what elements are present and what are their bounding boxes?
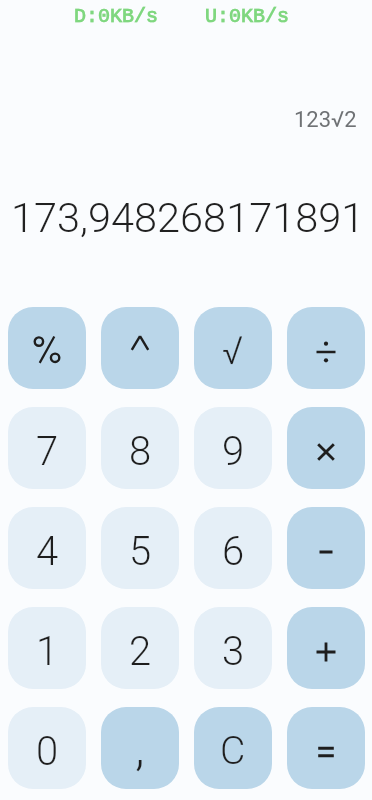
- staticText: 1: [36, 628, 59, 675]
- button[interactable]: 9: [194, 407, 272, 489]
- staticText: 6: [222, 528, 245, 575]
- button[interactable]: 3: [194, 607, 272, 689]
- button[interactable]: 4: [8, 507, 86, 589]
- button[interactable]: [287, 307, 365, 389]
- staticText: 3: [222, 628, 245, 675]
- staticText: D:0KB/s: [74, 5, 159, 28]
- staticText: √: [222, 328, 244, 374]
- staticText: 9: [222, 428, 245, 475]
- button[interactable]: [287, 507, 365, 589]
- button[interactable]: [8, 307, 86, 389]
- button[interactable]: ,: [101, 707, 179, 789]
- button[interactable]: C: [194, 707, 272, 789]
- button[interactable]: 7: [8, 407, 86, 489]
- button[interactable]: 5: [101, 507, 179, 589]
- staticText: ,: [135, 719, 145, 778]
- button[interactable]: 6: [194, 507, 272, 589]
- staticText: 7: [36, 428, 59, 475]
- staticText: 4: [36, 528, 59, 575]
- button[interactable]: 2: [101, 607, 179, 689]
- button[interactable]: 1: [8, 607, 86, 689]
- staticText: C: [220, 728, 246, 774]
- staticText: 0: [36, 728, 59, 775]
- staticText: U:0KB/s: [205, 5, 290, 28]
- staticText: 8: [129, 428, 152, 475]
- button[interactable]: [101, 307, 179, 389]
- button[interactable]: [287, 407, 365, 489]
- button[interactable]: 0: [8, 707, 86, 789]
- button[interactable]: √: [194, 307, 272, 389]
- button[interactable]: [287, 707, 365, 789]
- button[interactable]: [287, 607, 365, 689]
- staticText: 173,948268171891: [11, 193, 365, 242]
- staticText: 5: [129, 528, 152, 575]
- staticText: 123√2: [294, 107, 357, 133]
- staticText: 2: [129, 628, 152, 675]
- button[interactable]: 8: [101, 407, 179, 489]
